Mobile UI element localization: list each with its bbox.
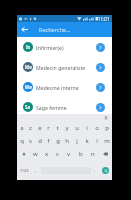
button[interactable]: Me (17, 77, 112, 97)
button[interactable]: g (53, 134, 62, 147)
staticText: m (104, 137, 110, 145)
button[interactable]: r (44, 121, 53, 134)
button[interactable]: k (82, 134, 92, 147)
button[interactable]: v (63, 147, 75, 160)
staticText: Infirmier(e) (36, 44, 95, 51)
button[interactable]: d (35, 134, 44, 147)
button[interactable]: Open (96, 63, 105, 72)
staticText: a (20, 124, 24, 132)
staticText: b (79, 150, 83, 158)
button[interactable]: h (62, 134, 72, 147)
staticText: Sa (25, 104, 31, 110)
staticText: . (94, 167, 96, 174)
staticText: t (56, 124, 59, 132)
button[interactable]: s (26, 134, 35, 147)
button[interactable]: Sa (17, 97, 112, 117)
staticText: p (105, 124, 109, 132)
button[interactable]: Shift (17, 147, 30, 160)
staticText: q (20, 137, 24, 145)
staticText: l (96, 137, 98, 145)
staticText: z (29, 124, 32, 132)
staticText: o (95, 124, 99, 132)
staticText: Sage femme (36, 104, 95, 111)
staticText: Me (25, 64, 32, 70)
button[interactable]: a (17, 121, 26, 134)
button[interactable]: In (17, 37, 112, 57)
button[interactable]: b (75, 147, 87, 160)
staticText: w (33, 150, 38, 158)
staticText: ?123 (20, 168, 29, 173)
staticText: Me (25, 84, 32, 90)
staticText: g (56, 137, 60, 145)
staticText: r (47, 124, 50, 132)
button[interactable]: . (91, 160, 98, 180)
staticText: s (29, 137, 32, 145)
button[interactable]: Open (96, 43, 105, 52)
staticText: v (67, 150, 71, 158)
button[interactable]: p (102, 121, 112, 134)
button[interactable]: y (62, 121, 72, 134)
button[interactable]: m (102, 134, 112, 147)
button[interactable]: Open (96, 83, 105, 92)
staticText: , (35, 167, 37, 174)
staticText: h (65, 137, 69, 145)
button[interactable]: Backspace (99, 147, 112, 160)
button[interactable]: z (26, 121, 35, 134)
button[interactable]: Voice input (103, 115, 108, 120)
staticText: x (45, 150, 49, 158)
button[interactable]: Back (17, 22, 32, 37)
staticText: Medecin generaliste (36, 64, 95, 71)
staticText: u (75, 124, 79, 132)
staticText: Recherche... (39, 26, 71, 33)
staticText: i (86, 124, 88, 132)
staticText: k (85, 137, 89, 145)
button[interactable]: t (53, 121, 62, 134)
staticText: In (26, 44, 31, 50)
staticText: e (38, 124, 42, 132)
staticText: c (56, 150, 59, 158)
staticText: f (47, 137, 50, 145)
staticText: d (38, 137, 42, 145)
button[interactable]: c (52, 147, 63, 160)
button[interactable]: Me (17, 57, 112, 77)
button[interactable]: x (41, 147, 52, 160)
button[interactable]: q (17, 134, 26, 147)
staticText: j (76, 137, 78, 145)
button[interactable]: o (92, 121, 102, 134)
button[interactable]: u (72, 121, 82, 134)
button[interactable]: , (31, 160, 41, 180)
staticText: 11:01 (98, 16, 110, 22)
button[interactable]: Open (96, 103, 105, 112)
button[interactable]: w (30, 147, 41, 160)
button[interactable]: Search (102, 167, 109, 174)
staticText: y (65, 124, 69, 132)
button[interactable]: e (35, 121, 44, 134)
button[interactable]: n (87, 147, 99, 160)
button[interactable]: ?123 (17, 160, 31, 180)
button[interactable]: i (82, 121, 92, 134)
button[interactable]: f (44, 134, 53, 147)
button[interactable]: l (92, 134, 102, 147)
staticText: Medecine interne (36, 84, 95, 91)
button[interactable]: j (72, 134, 82, 147)
staticText: n (91, 150, 95, 158)
